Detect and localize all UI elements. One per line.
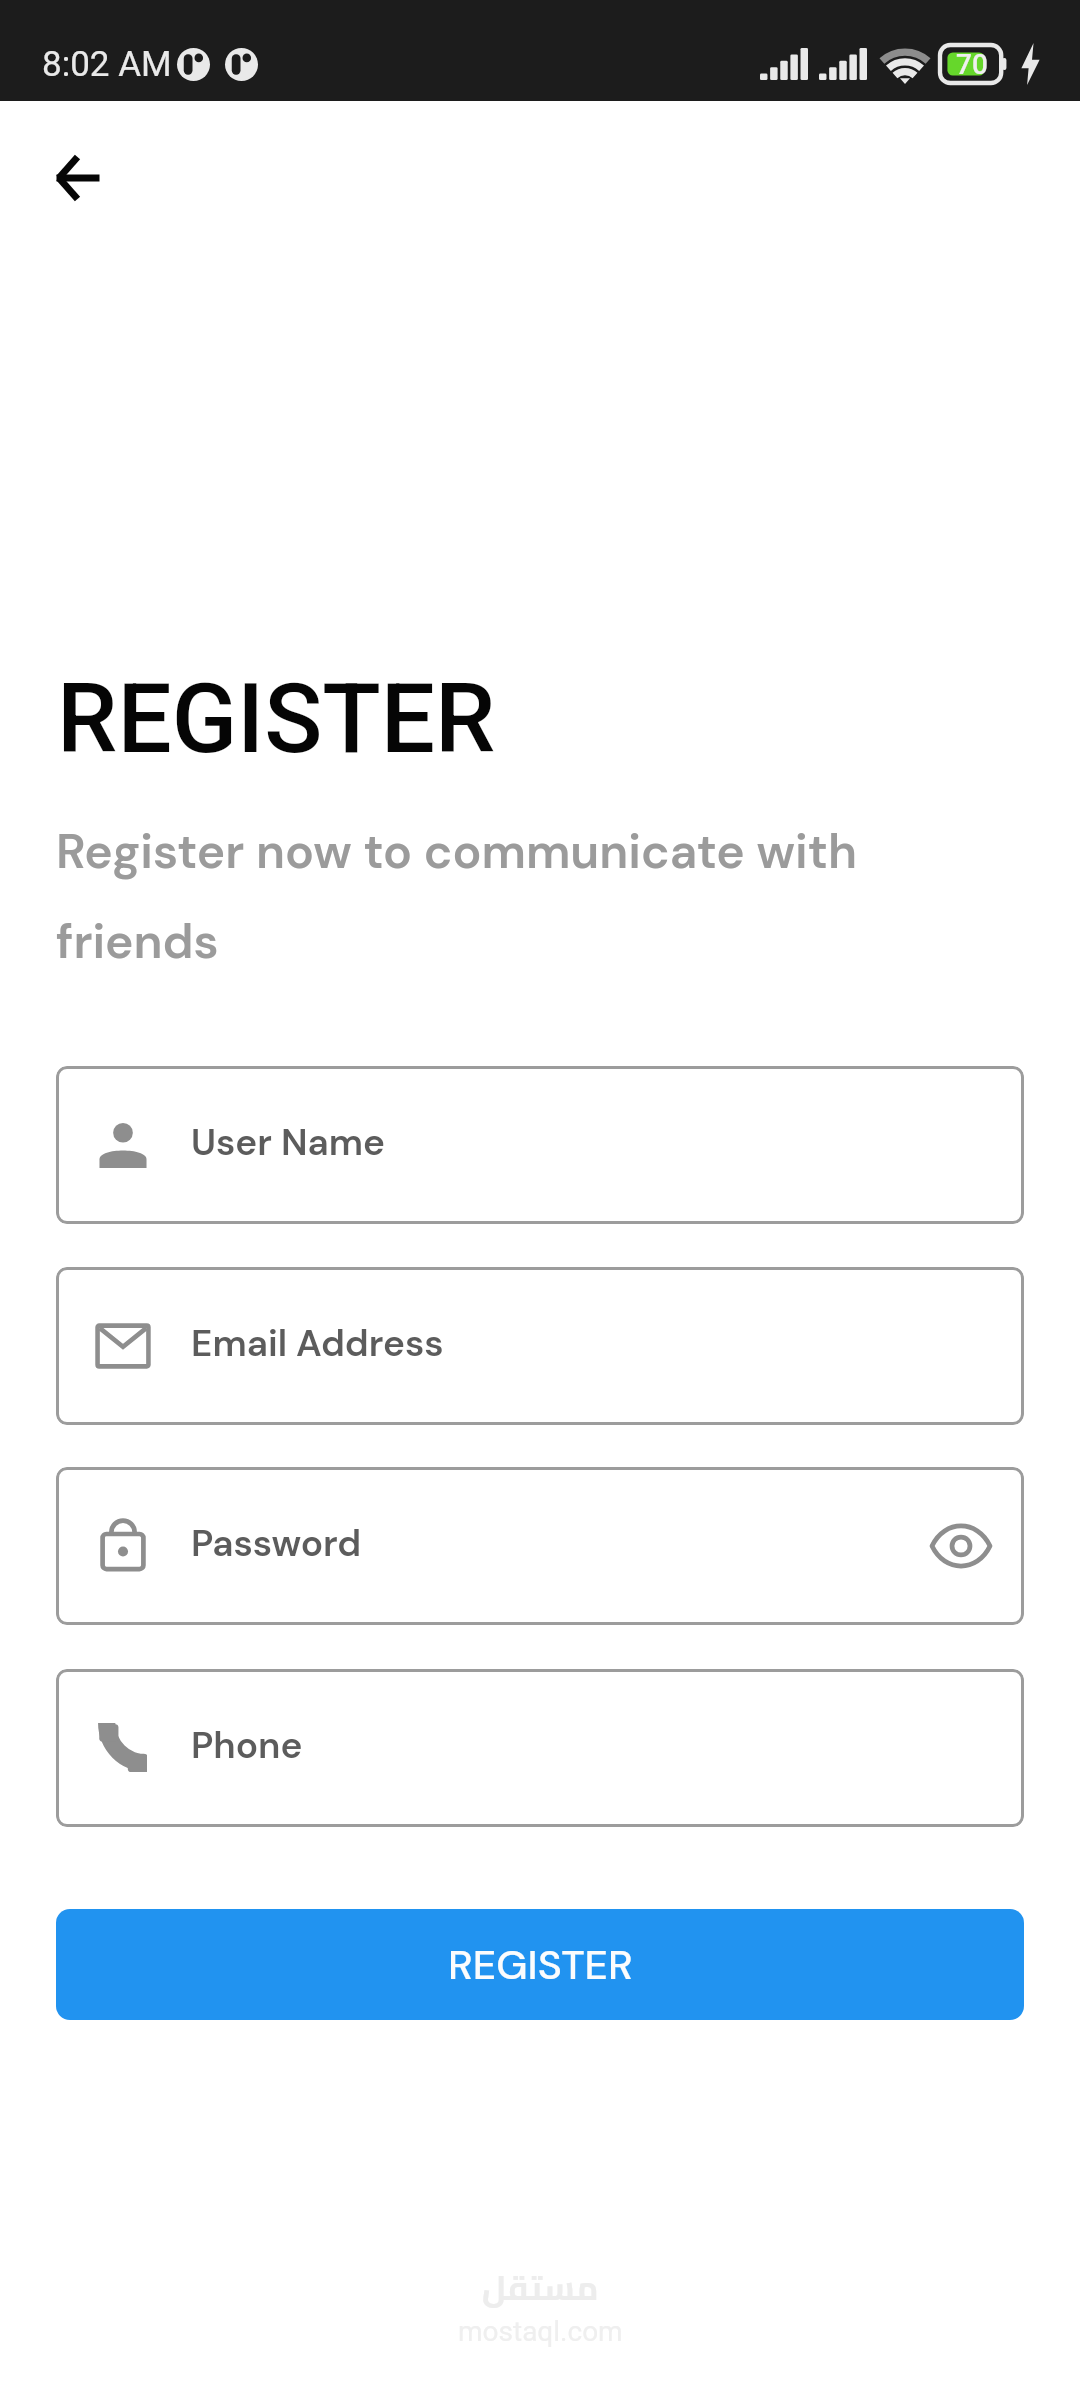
staticText: User Name [191, 1118, 385, 1166]
button[interactable]: User Name [56, 1066, 1024, 1224]
staticText: Password [191, 1519, 362, 1567]
button[interactable]: Show password [918, 1503, 1004, 1589]
staticText: REGISTER [448, 1938, 633, 1991]
button[interactable]: REGISTER [56, 1909, 1024, 2020]
staticText: 70 [956, 48, 988, 81]
button[interactable]: Phone [56, 1669, 1024, 1827]
button[interactable]: Email Address [56, 1267, 1024, 1425]
staticText: Email Address [191, 1319, 444, 1367]
staticText: مستقل [482, 2256, 599, 2320]
staticText: REGISTER [57, 663, 496, 776]
button[interactable]: Password [56, 1467, 1024, 1625]
staticText: Register now to communicate with friends [56, 820, 857, 972]
staticText: 8:02 AM [42, 44, 172, 85]
staticText: mostaql.com [458, 2315, 623, 2348]
button[interactable]: Back [29, 129, 127, 227]
staticText: Phone [191, 1721, 303, 1769]
